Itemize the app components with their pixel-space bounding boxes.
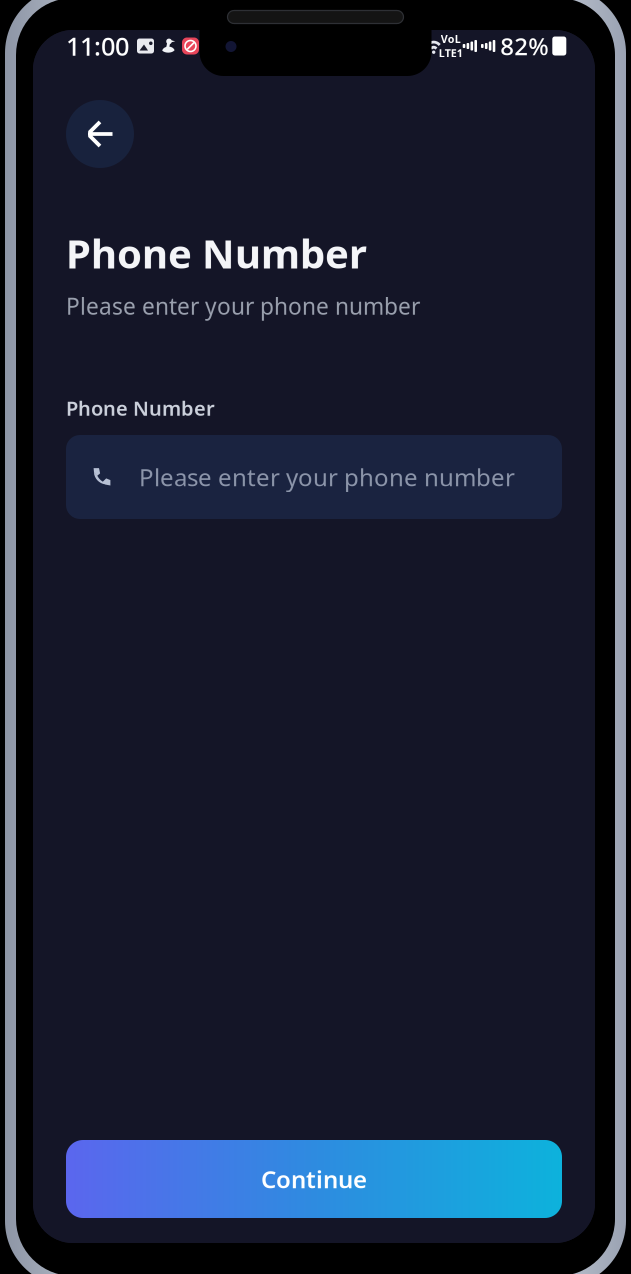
staticText: 11:00 [66, 29, 129, 63]
button[interactable]: Continue [66, 1140, 562, 1218]
button[interactable]: Back [66, 100, 134, 168]
staticText: Phone Number [66, 226, 367, 279]
staticText: LTE1 [439, 46, 463, 60]
staticText: VoL [441, 32, 461, 46]
staticText: Please enter your phone number [66, 291, 420, 321]
staticText: Please enter your phone number [139, 461, 515, 493]
staticText: Phone Number [66, 395, 215, 421]
staticText: 82% [500, 30, 548, 62]
button[interactable]: Please enter your phone number [66, 435, 562, 519]
staticText: Continue [261, 1163, 367, 1195]
